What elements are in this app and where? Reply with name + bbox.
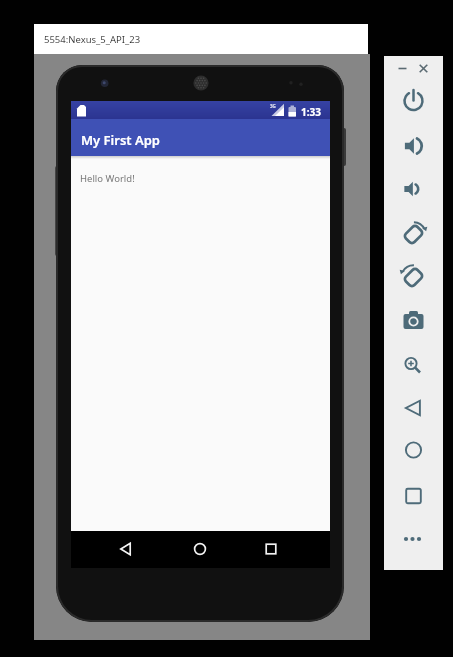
button[interactable] — [395, 432, 432, 468]
button[interactable] — [188, 537, 212, 561]
button[interactable] — [395, 478, 432, 514]
button[interactable] — [395, 346, 432, 382]
staticText: My First App — [81, 131, 160, 149]
staticText: 5554:Nexus_5_API_23 — [44, 33, 141, 46]
staticText: 3G — [270, 103, 276, 109]
button[interactable] — [114, 537, 138, 561]
button[interactable] — [395, 171, 432, 207]
button[interactable] — [395, 215, 432, 251]
button[interactable] — [393, 59, 412, 78]
button[interactable] — [395, 302, 432, 338]
button[interactable] — [259, 537, 283, 561]
staticText: Hello World! — [80, 172, 135, 185]
button[interactable] — [395, 258, 432, 294]
button[interactable] — [395, 390, 432, 426]
button[interactable] — [395, 521, 432, 557]
button[interactable] — [395, 83, 432, 119]
button[interactable] — [395, 128, 432, 164]
staticText: 1:33 — [301, 105, 321, 119]
button[interactable] — [414, 59, 433, 78]
